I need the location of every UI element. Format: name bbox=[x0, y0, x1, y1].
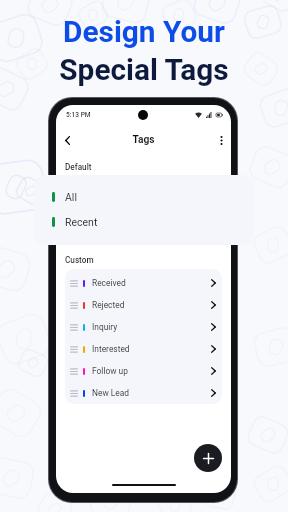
button[interactable]: Interested bbox=[65, 338, 222, 360]
button[interactable]: Recent bbox=[34, 211, 254, 233]
staticText: Custom bbox=[65, 255, 94, 265]
button[interactable]: New Lead bbox=[65, 382, 222, 404]
button[interactable]: Back bbox=[59, 132, 75, 148]
staticText: Rejected bbox=[92, 300, 125, 310]
staticText: Default bbox=[65, 162, 92, 172]
staticText: Inquiry bbox=[92, 322, 118, 332]
staticText: New Lead bbox=[92, 388, 130, 398]
staticText: Received bbox=[92, 278, 126, 288]
staticText: Follow up bbox=[92, 366, 128, 376]
button[interactable]: Received bbox=[65, 272, 222, 294]
staticText: All bbox=[65, 191, 77, 203]
staticText: Recent bbox=[65, 216, 98, 228]
button[interactable]: Inquiry bbox=[65, 316, 222, 338]
staticText: Tags bbox=[56, 134, 231, 146]
staticText: Design Your bbox=[0, 14, 288, 49]
staticText: Special Tags bbox=[0, 52, 288, 87]
button[interactable]: Rejected bbox=[65, 294, 222, 316]
button[interactable]: All bbox=[34, 186, 254, 208]
button[interactable]: Follow up bbox=[65, 360, 222, 382]
staticText: 5:13 PM bbox=[66, 111, 91, 119]
staticText: Interested bbox=[92, 344, 130, 354]
button[interactable]: More options bbox=[213, 132, 229, 148]
button[interactable]: Add tag bbox=[194, 444, 222, 472]
